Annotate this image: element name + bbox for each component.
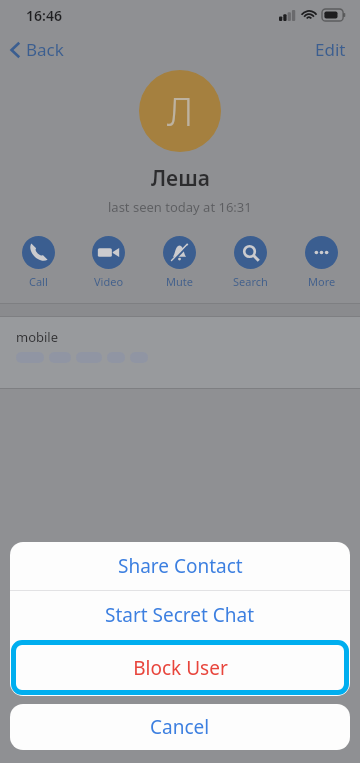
staticText: Video — [94, 274, 124, 289]
button[interactable]: Edit — [309, 34, 352, 65]
button[interactable]: Cancel — [10, 704, 350, 750]
staticText: Edit — [315, 38, 346, 61]
staticText: Call — [29, 274, 48, 289]
staticText: Search — [233, 274, 268, 289]
button[interactable]: Mute — [159, 234, 200, 291]
button[interactable]: Start Secret Chat — [10, 591, 350, 639]
staticText: last seen today at 16:31 — [108, 198, 252, 216]
button[interactable]: mobile — [0, 317, 360, 388]
staticText: Share Contact — [118, 553, 243, 579]
staticText: Леша — [151, 164, 210, 193]
button[interactable]: Video — [88, 234, 129, 291]
staticText: Mute — [166, 274, 193, 289]
staticText: Л — [167, 85, 194, 137]
staticText: Block User — [133, 655, 228, 681]
button[interactable]: Block User — [10, 639, 350, 696]
staticText: Back — [26, 38, 64, 61]
staticText: Cancel — [150, 714, 210, 740]
staticText: Start Secret Chat — [105, 602, 255, 628]
staticText: 16:46 — [26, 6, 62, 25]
staticText: mobile — [16, 328, 59, 346]
button[interactable]: Search — [229, 234, 272, 291]
button[interactable]: More — [301, 234, 342, 291]
button[interactable]: Share Contact — [10, 542, 350, 590]
staticText: More — [308, 274, 336, 289]
button[interactable]: Back — [6, 34, 68, 65]
button[interactable]: Call — [18, 234, 59, 291]
